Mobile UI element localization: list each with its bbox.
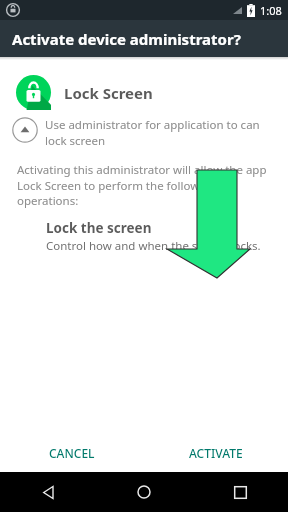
button[interactable]: Home bbox=[96, 472, 192, 512]
button[interactable]: Collapse bbox=[0, 117, 288, 148]
button[interactable]: ACTIVATE bbox=[144, 434, 288, 472]
other: Collapse bbox=[12, 117, 38, 143]
staticText: Control how and when the screen locks. bbox=[46, 238, 261, 254]
staticText: 1:08 bbox=[260, 3, 282, 18]
staticText: Use administrator for application to can… bbox=[45, 117, 278, 148]
button[interactable]: Back bbox=[0, 472, 96, 512]
staticText: ACTIVATE bbox=[189, 445, 243, 461]
staticText: Activate device administrator? bbox=[12, 29, 241, 49]
staticText: Lock Screen bbox=[64, 83, 153, 103]
button[interactable]: Recent apps bbox=[192, 472, 288, 512]
staticText: CANCEL bbox=[49, 445, 95, 461]
button[interactable]: CANCEL bbox=[0, 434, 144, 472]
staticText: Lock the screen bbox=[46, 219, 152, 237]
staticText: Activating this administrator will allow… bbox=[17, 162, 272, 208]
